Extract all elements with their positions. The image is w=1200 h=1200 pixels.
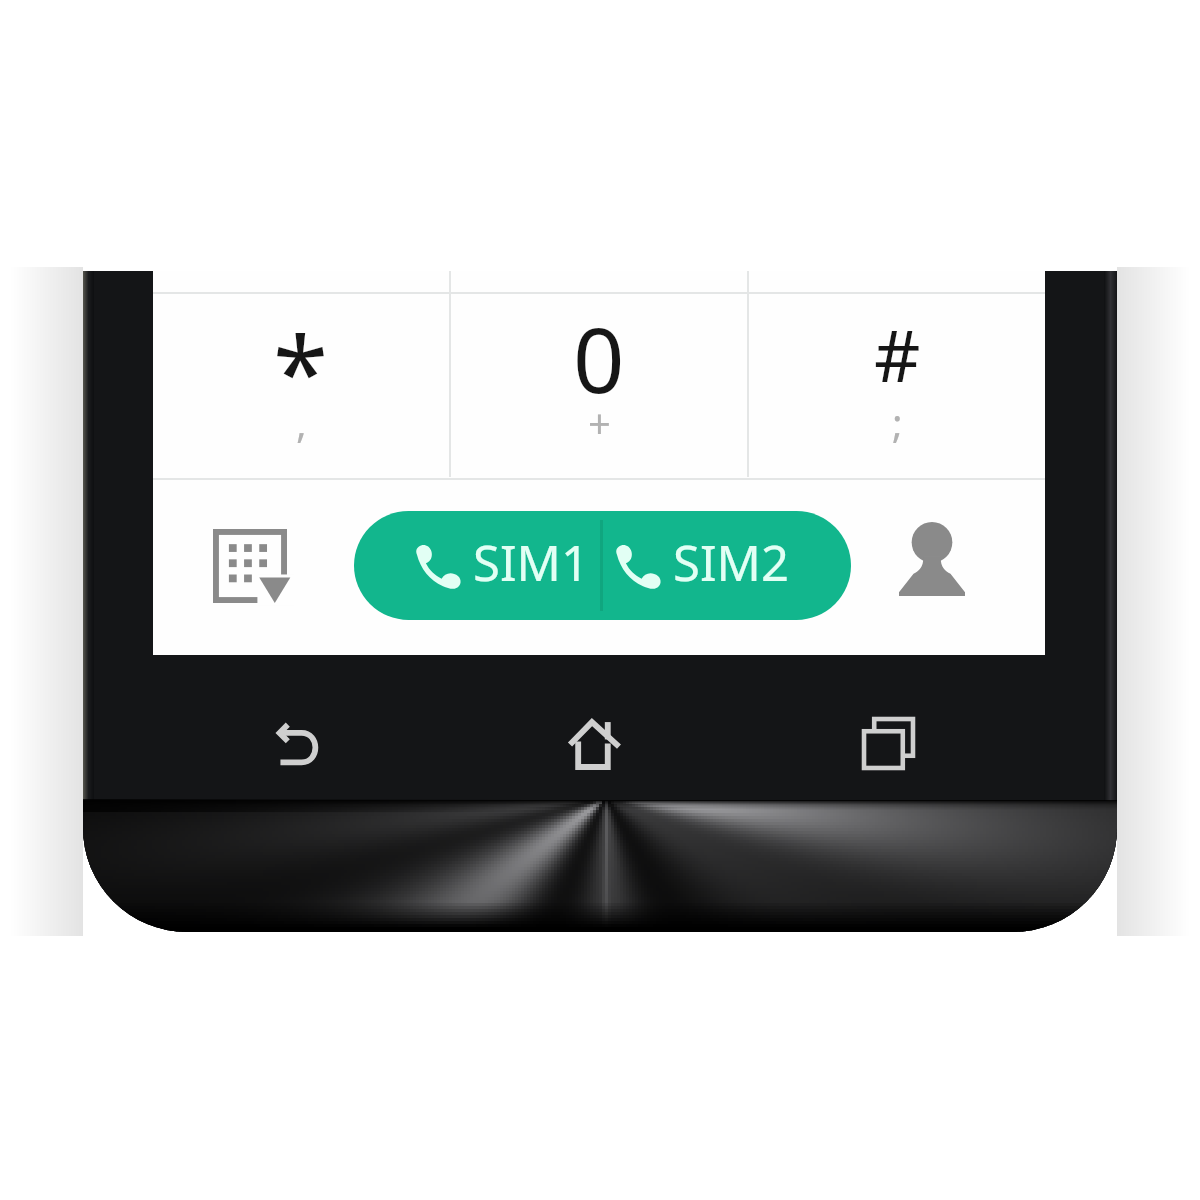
button[interactable]: 0 [451, 294, 747, 478]
button[interactable]: SIM2 [603, 511, 851, 620]
staticText: + [588, 395, 611, 449]
staticText: , [296, 395, 307, 449]
button[interactable]: Home [534, 693, 654, 793]
button[interactable]: Hide keypad [170, 498, 330, 636]
staticText: # [874, 305, 921, 403]
staticText: ; [892, 395, 903, 449]
button[interactable]: Back [237, 693, 357, 793]
staticText: * [273, 303, 329, 439]
button[interactable]: Recent apps [828, 693, 948, 793]
staticText: SIM1 [473, 529, 589, 596]
staticText: 0 [573, 297, 625, 420]
staticText: SIM2 [673, 529, 789, 596]
button[interactable]: * [153, 294, 449, 478]
button[interactable]: Contacts [852, 490, 1012, 628]
button[interactable]: # [749, 294, 1045, 478]
button[interactable]: SIM1 [354, 511, 601, 620]
